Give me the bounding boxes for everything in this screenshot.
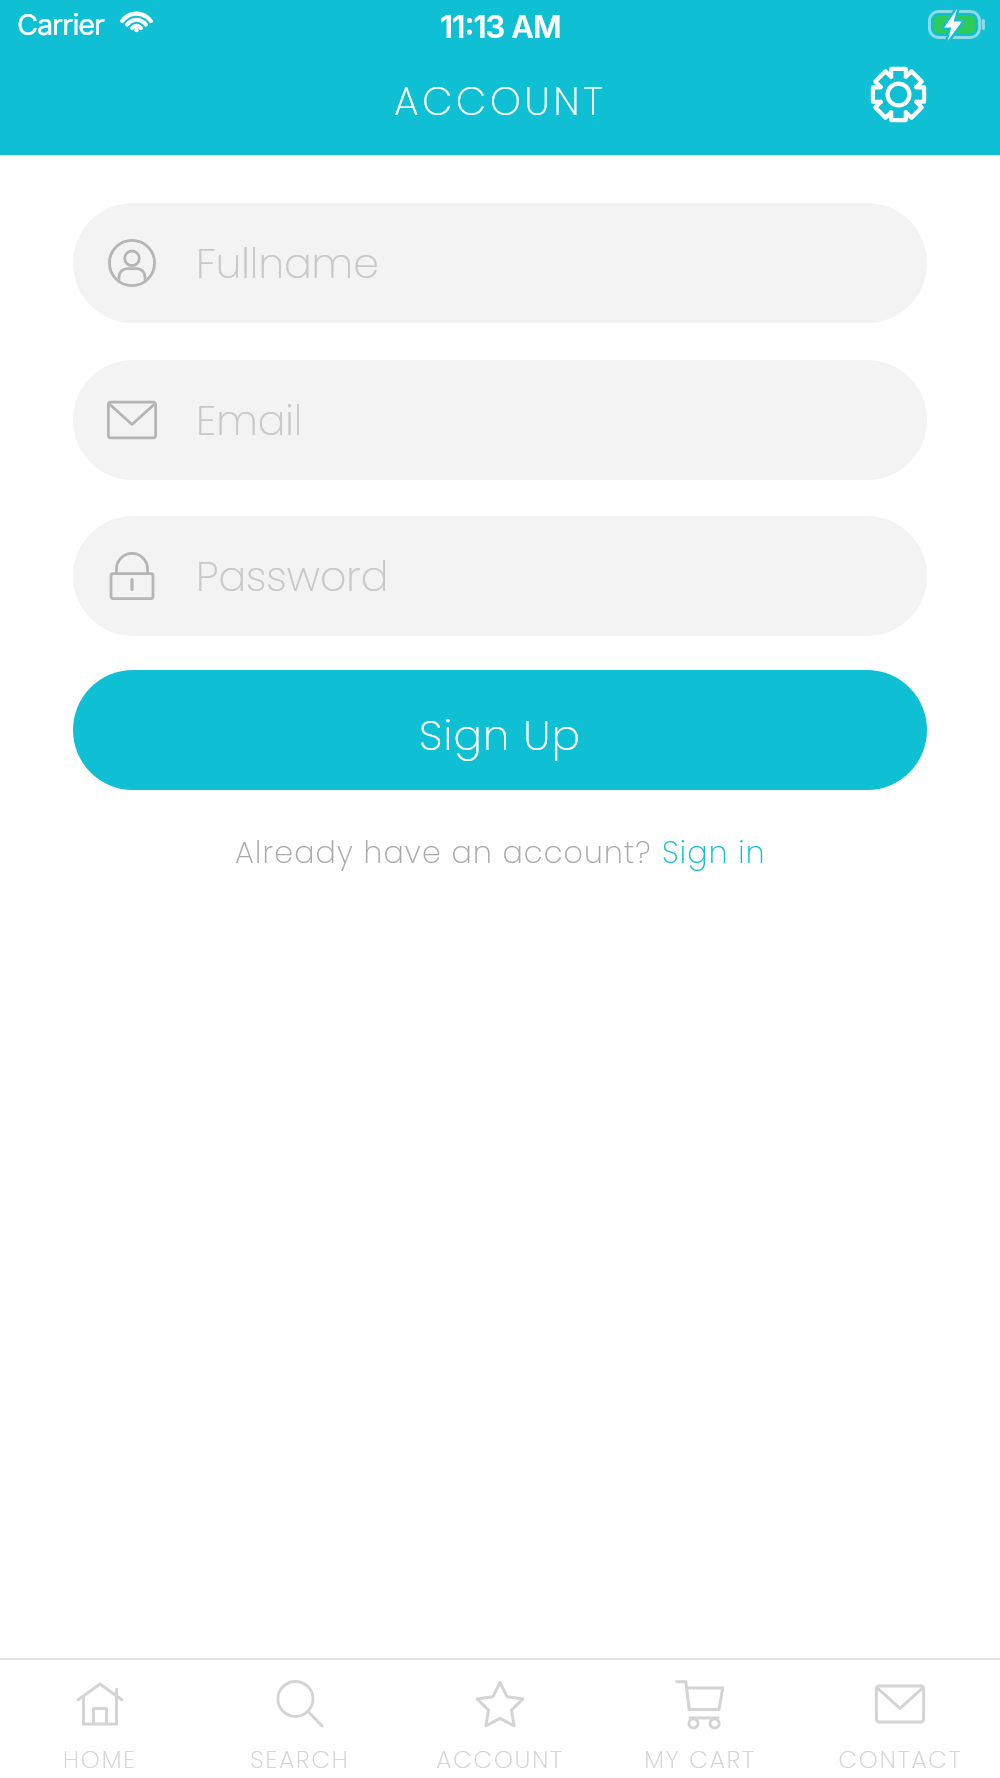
- staticText: MY CART: [644, 1743, 756, 1777]
- button[interactable]: Email: [73, 360, 927, 480]
- staticText: SEARCH: [250, 1743, 350, 1777]
- button[interactable]: CONTACT: [800, 1660, 1000, 1778]
- staticText: Password: [196, 548, 389, 605]
- button[interactable]: SEARCH: [200, 1660, 400, 1778]
- staticText: Carrier: [17, 7, 104, 42]
- button[interactable]: ACCOUNT: [400, 1660, 600, 1778]
- button[interactable]: HOME: [0, 1660, 200, 1778]
- button[interactable]: Sign in: [662, 832, 766, 874]
- staticText: Email: [196, 392, 303, 449]
- staticText: ACCOUNT: [394, 74, 607, 129]
- staticText: ACCOUNT: [436, 1743, 564, 1777]
- staticText: 11:13 AM: [440, 8, 561, 46]
- staticText: Sign in: [662, 832, 766, 874]
- staticText: CONTACT: [838, 1743, 963, 1777]
- staticText: HOME: [63, 1743, 137, 1777]
- button[interactable]: Settings: [853, 49, 943, 139]
- staticText: Fullname: [196, 235, 379, 292]
- button[interactable]: MY CART: [600, 1660, 800, 1778]
- button[interactable]: Fullname: [73, 203, 927, 323]
- button[interactable]: Password: [73, 516, 927, 636]
- button[interactable]: Sign Up: [73, 670, 927, 790]
- staticText: Sign Up: [419, 706, 582, 765]
- staticText: Already have an account?: [235, 832, 662, 874]
